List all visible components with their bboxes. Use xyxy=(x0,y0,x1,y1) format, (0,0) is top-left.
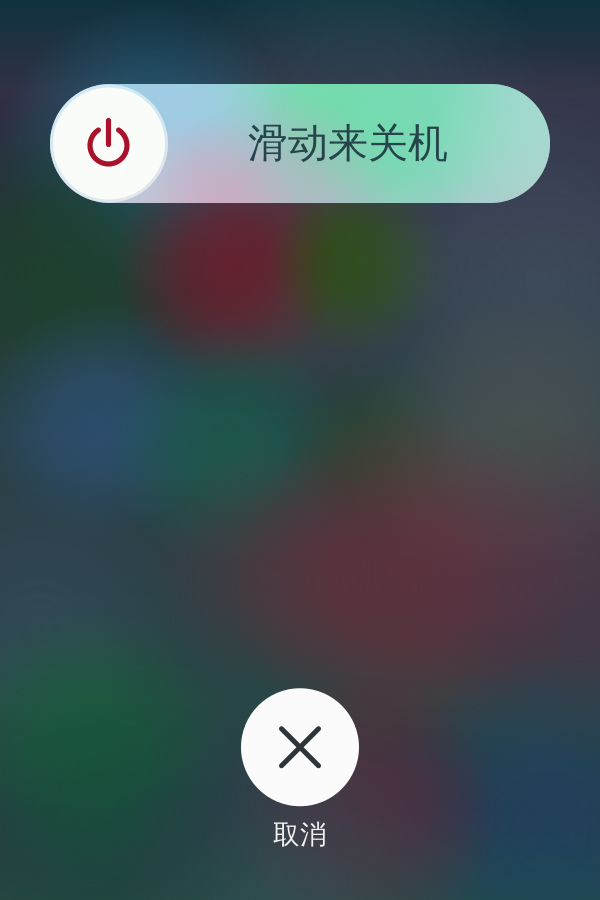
button[interactable]: 滑动来关机 xyxy=(50,84,550,203)
staticText: 取消 xyxy=(273,818,327,851)
staticText: 滑动来关机 xyxy=(248,119,448,168)
button[interactable]: 取消 xyxy=(241,688,359,851)
